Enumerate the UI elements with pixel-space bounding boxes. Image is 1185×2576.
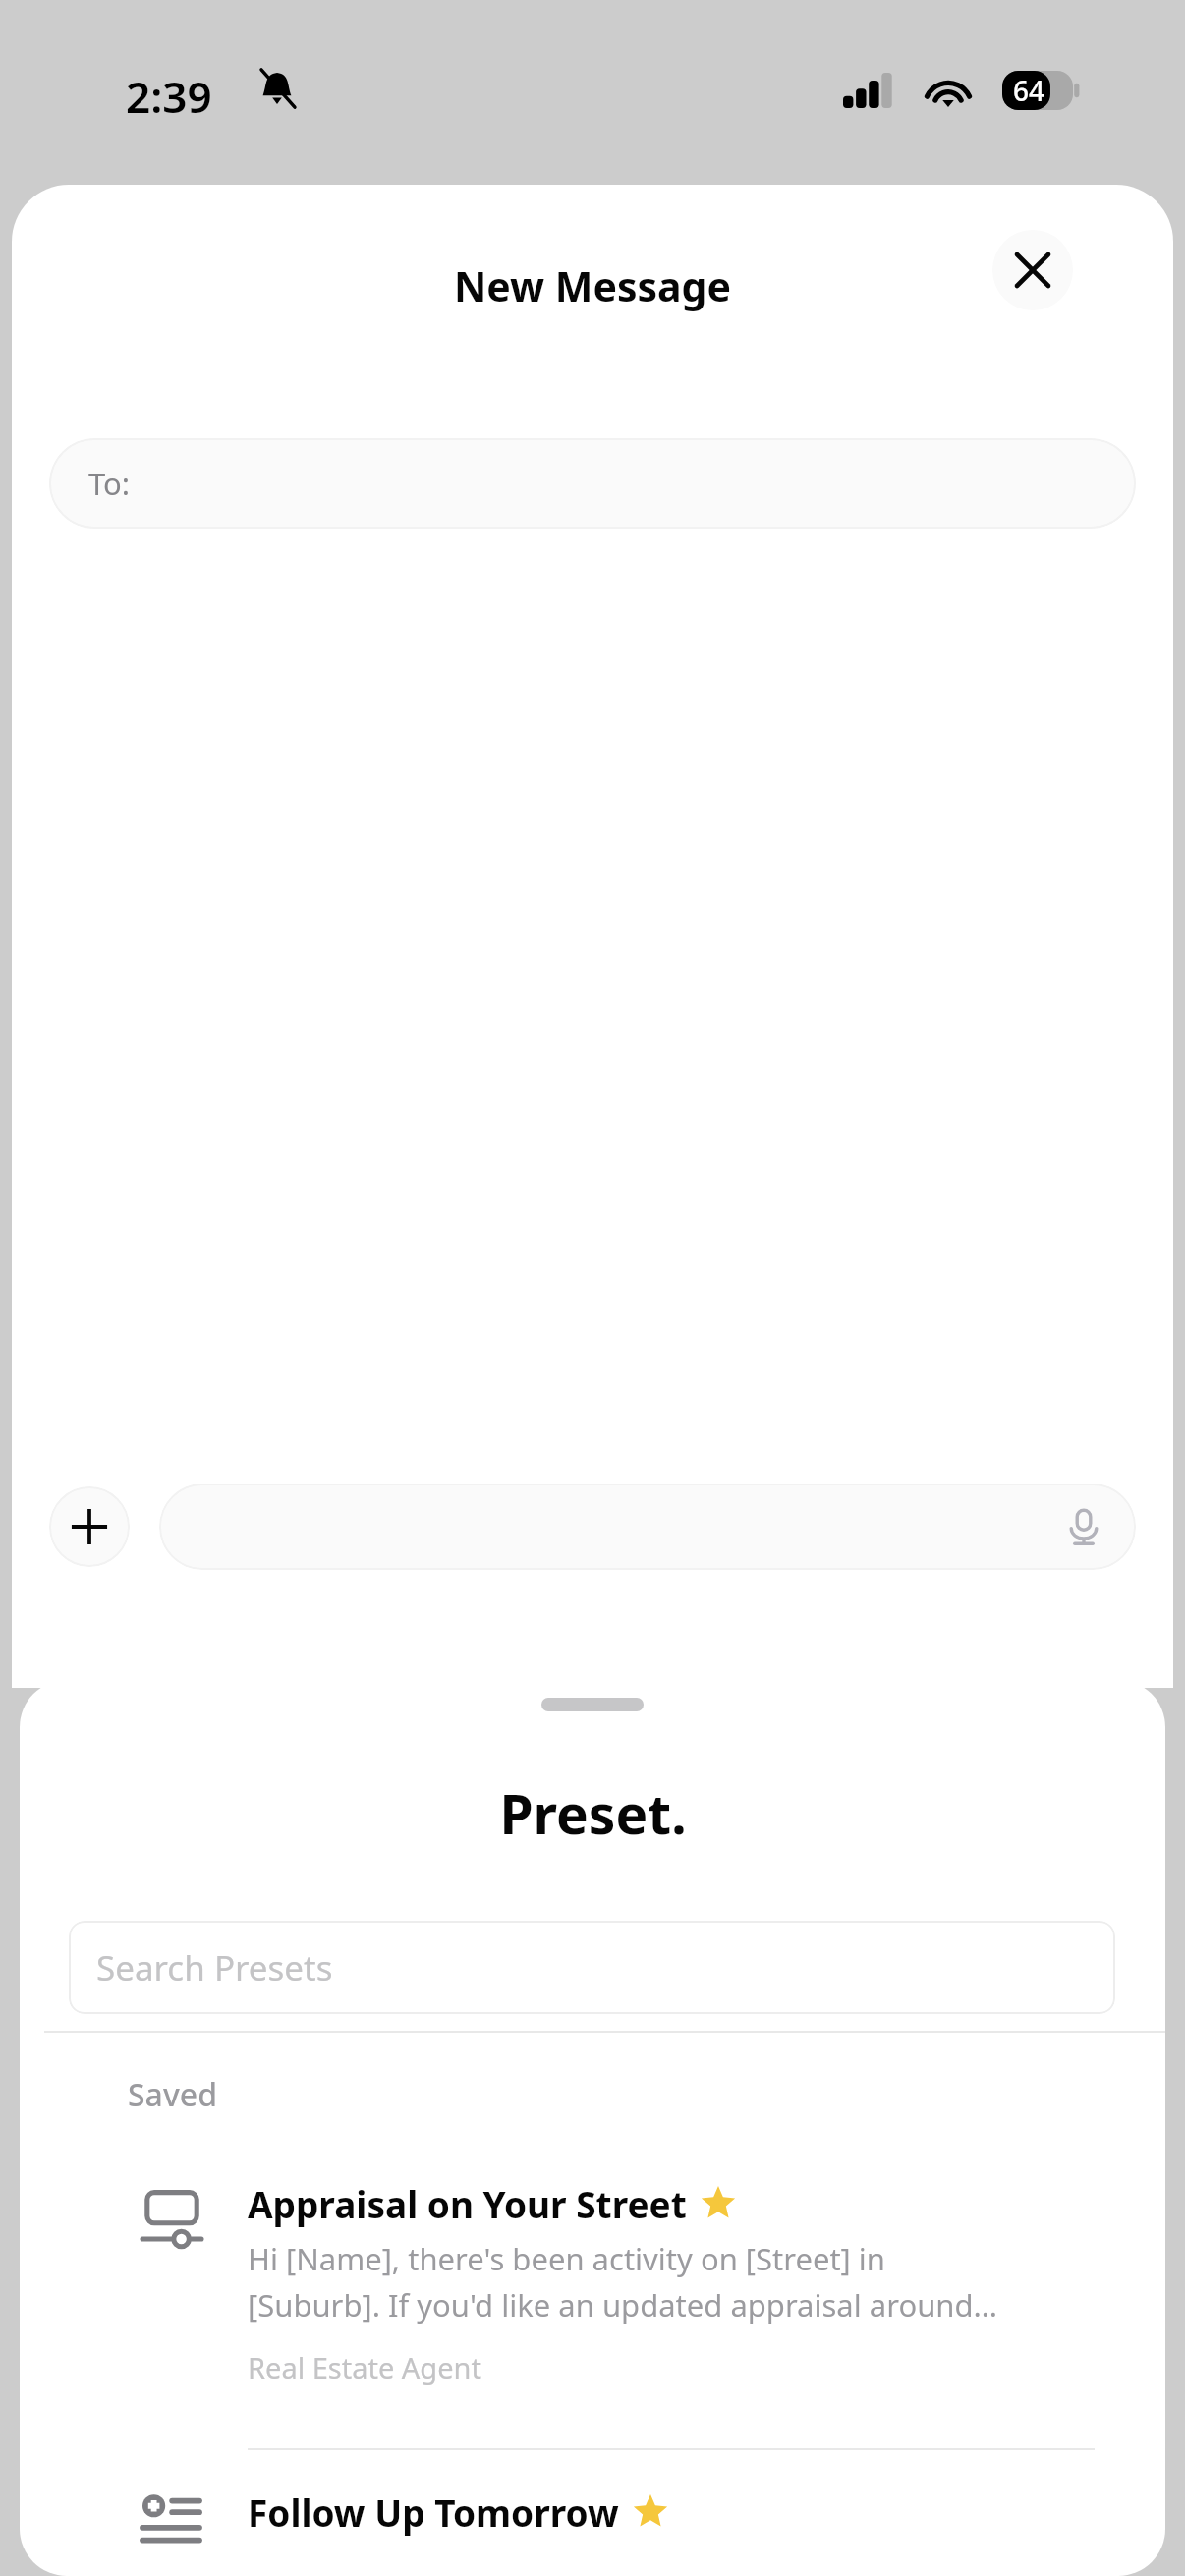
button[interactable]: Search Presets bbox=[69, 1921, 1115, 2014]
staticText: 64 bbox=[1013, 72, 1045, 109]
staticText: Preset. bbox=[499, 1776, 687, 1850]
staticText: Hi [Name], there's been activity on [Str… bbox=[248, 2238, 1112, 2325]
button[interactable]: Follow Up Tomorrow bbox=[20, 2486, 1165, 2576]
staticText: New Message bbox=[454, 258, 731, 313]
staticText: 2:39 bbox=[126, 67, 212, 126]
staticText: Follow Up Tomorrow bbox=[248, 2488, 619, 2537]
button[interactable]: Appraisal on Your Street bbox=[20, 2161, 1165, 2436]
button[interactable]: Close bbox=[992, 230, 1073, 310]
staticText: To: bbox=[88, 463, 131, 504]
button[interactable]: Add attachment bbox=[49, 1486, 130, 1567]
staticText: Real Estate Agent bbox=[248, 2348, 481, 2386]
button[interactable]: Dictate bbox=[159, 1484, 1136, 1570]
button[interactable]: Dictate bbox=[1061, 1504, 1106, 1549]
staticText: Saved bbox=[128, 2073, 217, 2116]
staticText: Search Presets bbox=[96, 1944, 333, 1991]
staticText: Appraisal on Your Street bbox=[248, 2179, 687, 2228]
button[interactable]: To: bbox=[49, 438, 1136, 529]
